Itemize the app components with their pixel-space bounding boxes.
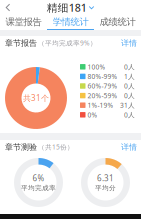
staticText: 共31个 [23, 93, 49, 103]
button[interactable]: 课堂报告 [0, 15, 47, 29]
staticText: 20%-59% [87, 91, 117, 100]
button[interactable]: 详情 [113, 35, 137, 51]
staticText: 6% [32, 173, 44, 183]
button[interactable]: 详情 [113, 139, 137, 155]
staticText: 详情 [121, 142, 137, 152]
staticText: 平均分 [95, 184, 116, 192]
staticText: 0人 [124, 62, 135, 71]
staticText: 6.31 [97, 173, 114, 183]
staticText: 0人 [124, 91, 135, 100]
button[interactable]: 精细181 [47, 0, 94, 15]
staticText: （平均完成率9%） [38, 39, 97, 47]
staticText: （共15份） [38, 143, 74, 151]
button[interactable]: 学情统计 [47, 15, 94, 29]
staticText: 31人 [120, 101, 135, 110]
staticText: 60%-79% [87, 82, 117, 90]
button[interactable]: 成绩统计 [94, 15, 141, 29]
button[interactable]: Back [0, 0, 16, 15]
staticText: 1人 [124, 72, 135, 81]
staticText: 0人 [124, 110, 135, 119]
staticText: 平均完成率 [21, 184, 56, 192]
staticText: 学情统计 [52, 16, 88, 28]
staticText: 精细181 [47, 0, 87, 15]
staticText: 0% [87, 110, 97, 119]
staticText: 0人 [124, 82, 135, 90]
staticText: 课堂报告 [5, 16, 41, 28]
staticText: 80%-99% [87, 72, 117, 81]
staticText: 章节报告 [5, 38, 37, 48]
staticText: 详情 [121, 38, 137, 48]
staticText: 章节测验 [5, 142, 37, 152]
staticText: 成绩统计 [99, 16, 135, 28]
staticText: 1%-19% [87, 101, 113, 110]
staticText: 100% [87, 62, 105, 71]
